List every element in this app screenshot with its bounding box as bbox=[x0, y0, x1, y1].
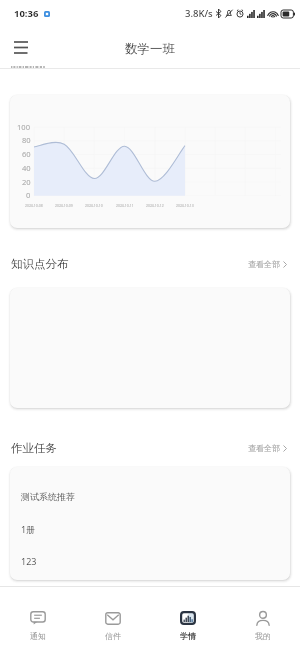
staticText: 1册 bbox=[21, 523, 36, 535]
button[interactable]: 我的 bbox=[225, 587, 300, 649]
button[interactable]: 查看全部 bbox=[246, 257, 289, 271]
staticText: 数学一班 bbox=[125, 41, 175, 57]
staticText: 通知 bbox=[30, 631, 46, 641]
staticText: 100 bbox=[17, 122, 31, 132]
staticText: 2024-10-12 bbox=[146, 203, 164, 208]
staticText: 2024-10-11 bbox=[116, 203, 134, 208]
staticText: 20 bbox=[22, 177, 31, 187]
staticText: 2024-10-09 bbox=[55, 203, 73, 208]
staticText: 查看全部 bbox=[248, 443, 280, 453]
staticText: 40 bbox=[22, 163, 31, 173]
staticText: 作业任务 bbox=[11, 441, 57, 455]
staticText: 3.8K/s bbox=[185, 7, 213, 20]
button[interactable]: 信件 bbox=[75, 587, 150, 649]
staticText: 学情 bbox=[180, 631, 196, 641]
button[interactable]: Menu bbox=[9, 35, 33, 59]
staticText: 80 bbox=[22, 135, 31, 145]
button[interactable]: 查看全部 bbox=[246, 441, 289, 455]
staticText: 2024-10-10 bbox=[85, 203, 103, 208]
button[interactable]: 通知 bbox=[0, 587, 75, 649]
staticText: 2024-10-13 bbox=[176, 203, 194, 208]
staticText: 0 bbox=[26, 190, 31, 200]
staticText: 信件 bbox=[105, 631, 121, 641]
button[interactable]: 学情 bbox=[150, 587, 225, 649]
staticText: 10:36 bbox=[14, 7, 39, 20]
staticText: 知识点分布 bbox=[11, 257, 69, 271]
staticText: 我的 bbox=[255, 631, 271, 641]
staticText: 测试系统推荐 bbox=[21, 491, 75, 502]
staticText: 123 bbox=[21, 555, 37, 567]
staticText: 2024-10-08 bbox=[25, 203, 43, 208]
staticText: 查看全部 bbox=[248, 259, 280, 269]
staticText: 60 bbox=[22, 149, 31, 159]
